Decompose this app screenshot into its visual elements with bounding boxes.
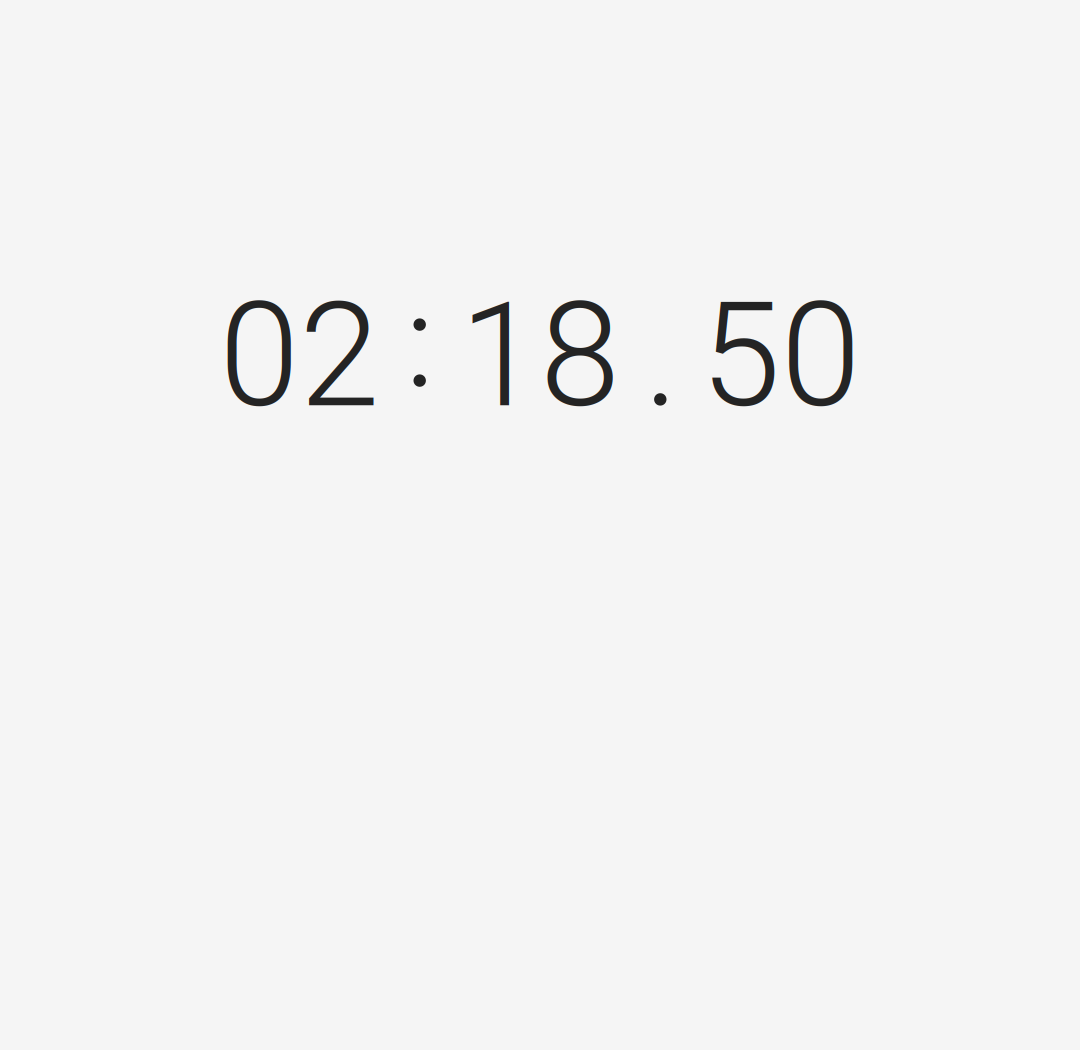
staticText: 2 <box>299 272 379 440</box>
staticText: 8 <box>540 272 620 440</box>
staticText: 0 <box>219 272 299 440</box>
button[interactable]: Elapsed time 02:18.50 <box>219 272 861 432</box>
staticText: 0 <box>781 272 861 440</box>
staticText: 5 <box>700 272 780 440</box>
staticText: 1 <box>460 272 540 440</box>
